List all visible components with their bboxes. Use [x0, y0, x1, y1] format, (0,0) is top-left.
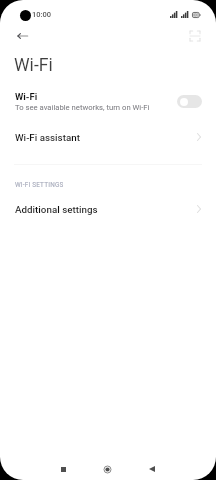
button[interactable]: Back [141, 458, 163, 480]
button[interactable]: Recents [52, 458, 74, 480]
staticText: Wi-Fi [15, 91, 38, 102]
staticText: To see available networks, turn on Wi-Fi [15, 103, 150, 112]
button[interactable]: Wi-Fi assistant [0, 127, 216, 147]
button[interactable]: Home [96, 458, 118, 480]
button[interactable]: Scan QR code [184, 26, 206, 46]
button[interactable]: Wi-Fi toggle [177, 95, 202, 108]
staticText: WI-FI SETTINGS [15, 181, 64, 189]
staticText: Wi-Fi [14, 55, 53, 76]
button[interactable]: Additional settings [0, 199, 216, 219]
button[interactable]: Wi-Fi [0, 87, 216, 115]
staticText: Wi-Fi assistant [15, 132, 80, 143]
staticText: Additional settings [15, 204, 98, 215]
staticText: 10:00 [32, 10, 52, 19]
button[interactable]: Back [10, 26, 34, 46]
